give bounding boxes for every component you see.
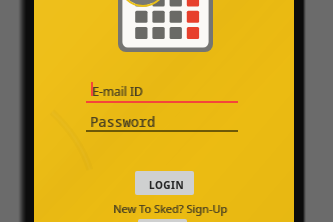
- staticText: E-mail ID: [93, 83, 144, 99]
- staticText: LOGIN: [149, 178, 185, 192]
- button[interactable]: E-mail ID: [86, 80, 238, 103]
- button[interactable]: LOGIN: [135, 171, 194, 195]
- button[interactable]: Password: [86, 112, 238, 131]
- button[interactable]: Continue: [138, 219, 187, 222]
- staticText: New To Sked? Sign-Up: [114, 201, 229, 216]
- staticText: LOGIN: [149, 178, 185, 192]
- staticText: Password: [90, 113, 155, 131]
- staticText: New To Sked? Sign-Up: [113, 201, 228, 216]
- staticText: E-mail ID: [92, 83, 143, 99]
- button[interactable]: New To Sked? Sign-Up: [111, 200, 229, 216]
- staticText: Password: [91, 113, 156, 131]
